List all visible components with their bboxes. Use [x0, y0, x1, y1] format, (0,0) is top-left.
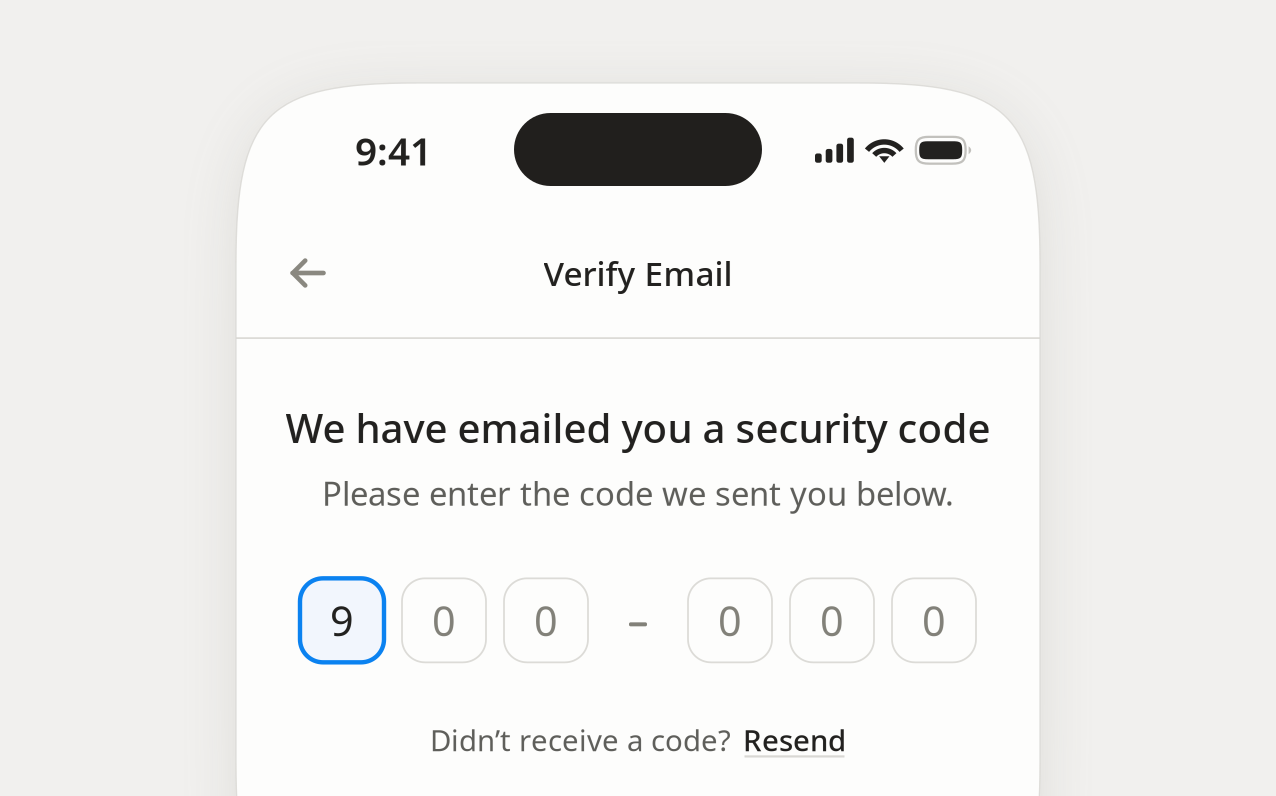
staticText: We have emailed you a security code	[285, 400, 990, 455]
button[interactable]: Digit 6	[892, 578, 976, 662]
staticText: 0	[718, 593, 742, 648]
button[interactable]: Digit 3	[504, 578, 588, 662]
staticText: 0	[432, 593, 456, 648]
button[interactable]: Didn’t receive a code?	[430, 720, 846, 759]
staticText: 9:41	[355, 125, 432, 176]
staticText: 0	[820, 593, 844, 648]
staticText: Please enter the code we sent you below.	[322, 471, 954, 515]
button[interactable]: Digit 5	[790, 578, 874, 662]
staticText: Didn’t receive a code?	[430, 720, 731, 759]
staticText: Verify Email	[543, 251, 732, 295]
staticText: Resend	[743, 720, 846, 759]
button[interactable]: Back	[279, 244, 337, 302]
button[interactable]: Digit 2	[402, 578, 486, 662]
button[interactable]: Digit 1	[300, 578, 384, 662]
button[interactable]: Digit 4	[688, 578, 772, 662]
staticText: 0	[922, 593, 946, 648]
staticText: 0	[534, 593, 558, 648]
staticText: 9	[330, 593, 354, 648]
